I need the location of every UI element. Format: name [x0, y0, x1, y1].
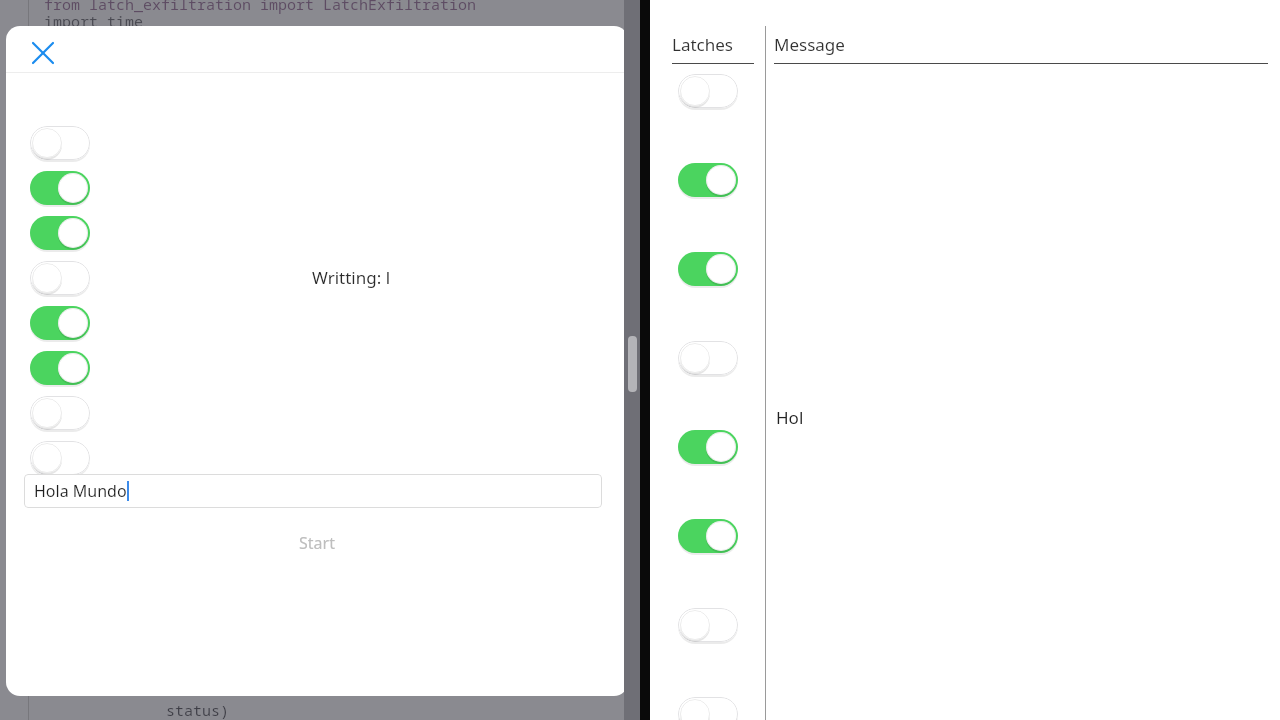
button[interactable]: Row latch 5	[678, 430, 738, 464]
button[interactable]: Row latch 1	[678, 74, 738, 108]
staticText: Message	[774, 33, 845, 56]
button[interactable]: Start	[6, 526, 628, 560]
button[interactable]: Row latch 7	[678, 608, 738, 642]
staticText: Start	[299, 532, 335, 554]
staticText: import time	[44, 11, 144, 31]
button[interactable]: Close	[26, 36, 60, 70]
button[interactable]: Latch 5	[30, 306, 90, 340]
button[interactable]: Row latch 8	[678, 697, 738, 720]
button[interactable]: Latch 8	[30, 441, 90, 475]
staticText: status)	[166, 700, 230, 720]
button[interactable]: Latch 6	[30, 351, 90, 385]
staticText: Writting: l	[312, 266, 391, 289]
staticText: Hol	[776, 406, 804, 429]
button[interactable]: Row latch 4	[678, 341, 738, 375]
button[interactable]: Row latch 2	[678, 163, 738, 197]
staticText: Latches	[672, 33, 733, 56]
button[interactable]: Latch 3	[30, 216, 90, 250]
button[interactable]: Row latch 3	[678, 252, 738, 286]
button[interactable]: Latch 4	[30, 261, 90, 295]
staticText: from latch_exfiltration import LatchExfi…	[44, 0, 477, 14]
button[interactable]: Hola Mundo	[24, 474, 602, 508]
button[interactable]: Latch 2	[30, 171, 90, 205]
button[interactable]: Latch 7	[30, 396, 90, 430]
staticText: Hola Mundo	[34, 480, 127, 502]
button[interactable]: Latch 1	[30, 126, 90, 160]
button[interactable]: Row latch 6	[678, 519, 738, 553]
